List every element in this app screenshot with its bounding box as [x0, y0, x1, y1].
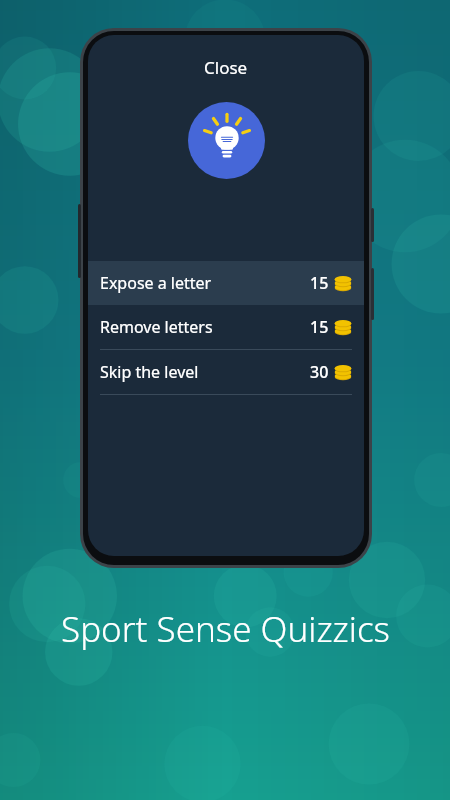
- button[interactable]: Skip the level: [88, 350, 364, 394]
- staticText: Close: [204, 56, 248, 79]
- staticText: 15: [310, 316, 329, 338]
- staticText: 15: [310, 272, 329, 294]
- staticText: Sport Sense Quizzics: [61, 605, 390, 653]
- staticText: Skip the level: [100, 361, 310, 383]
- button[interactable]: Hint: [188, 102, 265, 179]
- button[interactable]: Expose a letter: [88, 261, 364, 305]
- staticText: 30: [310, 361, 329, 383]
- staticText: Expose a letter: [100, 272, 310, 294]
- staticText: Remove letters: [100, 316, 310, 338]
- button[interactable]: Close: [88, 56, 364, 79]
- button[interactable]: Remove letters: [88, 305, 364, 349]
